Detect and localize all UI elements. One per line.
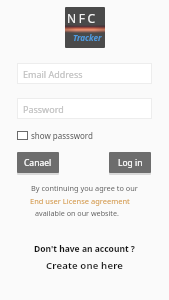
button[interactable]: Email Address xyxy=(17,63,152,84)
button[interactable]: show passsword xyxy=(17,129,93,141)
staticText: Tracker xyxy=(73,32,102,43)
staticText: Password xyxy=(23,103,64,115)
staticText: Don't have an account ? xyxy=(34,243,135,255)
staticText: By continuing you agree to our xyxy=(31,183,138,193)
button[interactable]: Log in xyxy=(109,152,151,173)
staticText: show passsword xyxy=(31,130,93,141)
button[interactable]: Create one here xyxy=(46,259,124,272)
staticText: Canael xyxy=(24,157,52,169)
staticText: Email Address xyxy=(23,68,83,80)
staticText: Log in xyxy=(118,157,143,169)
button[interactable]: Canael xyxy=(17,152,59,173)
staticText: N F C xyxy=(67,10,95,26)
staticText: available on our website. xyxy=(35,208,119,218)
button[interactable]: End user License agreement xyxy=(30,196,130,206)
button[interactable]: Password xyxy=(17,98,152,119)
